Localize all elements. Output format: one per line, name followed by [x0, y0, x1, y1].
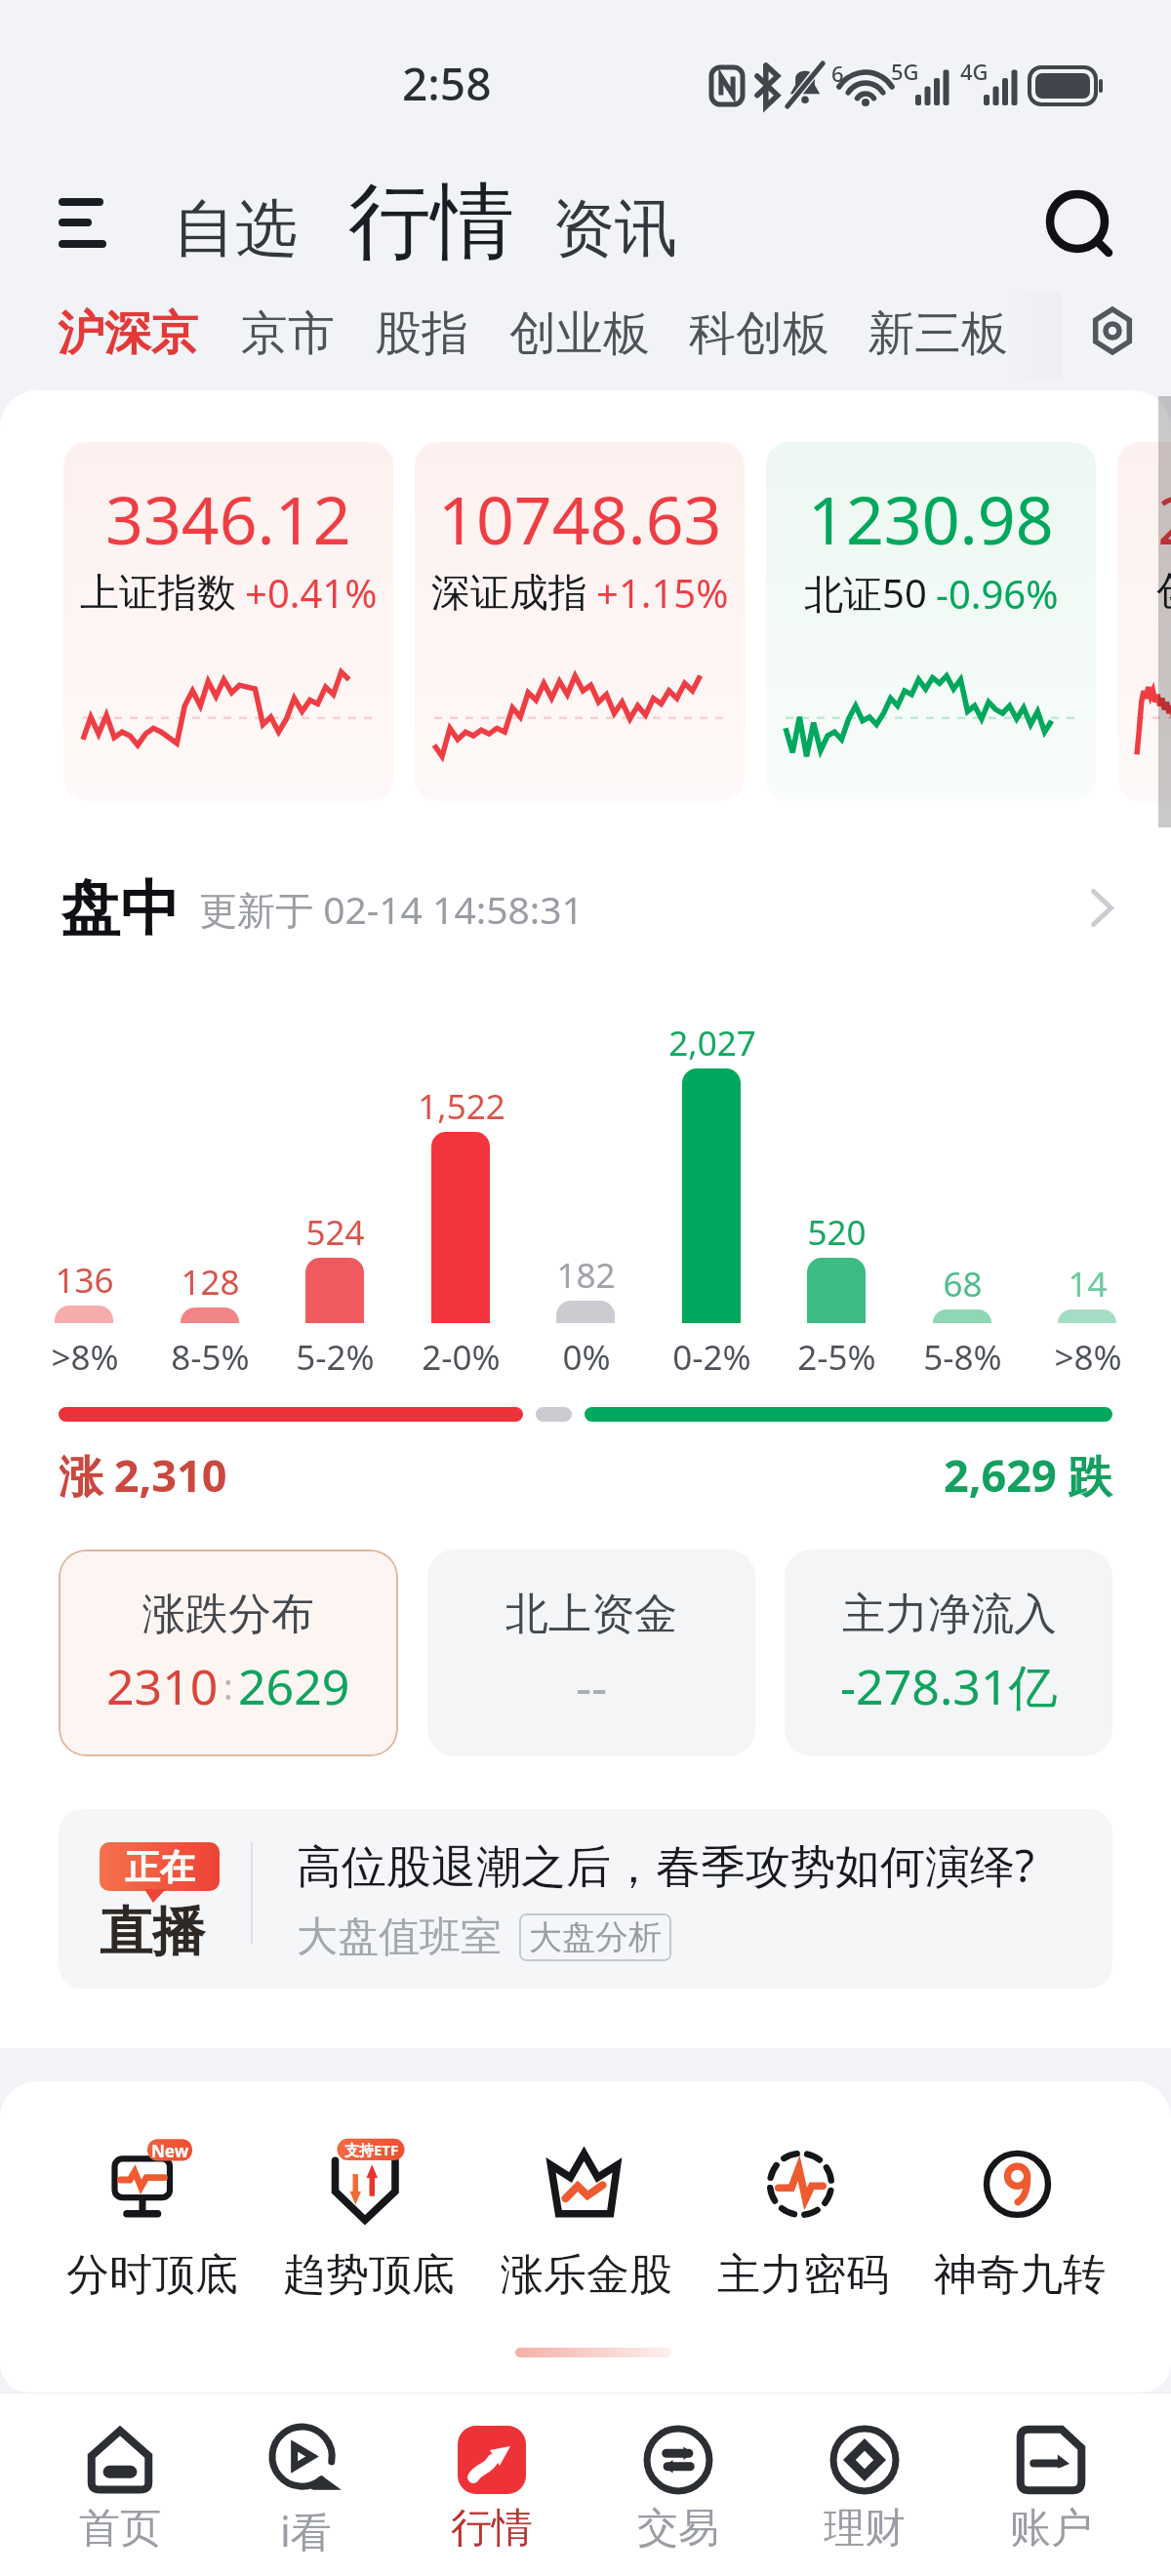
staticText: 资讯 — [552, 189, 677, 268]
button[interactable]: 沪深京 — [44, 289, 212, 379]
button[interactable]: 首页 — [27, 2410, 213, 2566]
staticText: 首页 — [79, 2503, 161, 2555]
staticText: 深证成指 — [431, 568, 587, 617]
staticText: 京市 — [241, 304, 335, 363]
button[interactable]: 资讯 — [541, 178, 689, 280]
staticText: 68 — [943, 1261, 983, 1308]
staticText: 2 — [1157, 473, 1171, 564]
staticText: 账户 — [1010, 2503, 1092, 2555]
staticText: 10748.63 — [438, 473, 722, 564]
staticText: >8% — [51, 1334, 119, 1381]
staticText: 理财 — [824, 2503, 906, 2555]
button[interactable]: 10748.63 — [415, 442, 745, 801]
staticText: 行情 — [348, 170, 514, 274]
staticText: 520 — [807, 1209, 867, 1256]
staticText: 涨乐金股 — [501, 2248, 672, 2302]
staticText: 主力密码 — [717, 2248, 889, 2302]
button[interactable]: 理财 — [772, 2410, 957, 2566]
button[interactable] — [0, 854, 1171, 963]
staticText: 更新于 02-14 14:58:31 — [199, 883, 584, 935]
staticText: : — [223, 1663, 233, 1711]
staticText: -0.96% — [936, 567, 1059, 620]
staticText: +0.41% — [245, 566, 378, 619]
staticText: New — [151, 2140, 189, 2161]
staticText: 高位股退潮之后，春季攻势如何演绎? — [297, 1834, 1034, 1896]
staticText: 大盘分析 — [529, 1916, 662, 1958]
staticText: 1230.98 — [808, 473, 1054, 564]
staticText: 科创板 — [689, 304, 829, 363]
button[interactable]: 涨乐金股 — [485, 2127, 688, 2313]
staticText: 盘中 — [61, 871, 180, 946]
button[interactable]: 主力密码 — [702, 2127, 905, 2313]
staticText: 2,629 跌 — [944, 1445, 1112, 1505]
staticText: 交易 — [637, 2503, 719, 2555]
staticText: 分时顶底 — [66, 2248, 238, 2302]
staticText: 8-5% — [171, 1334, 250, 1381]
staticText: 自选 — [173, 189, 298, 268]
button[interactable]: 账户 — [958, 2410, 1144, 2566]
staticText: 2310 — [106, 1653, 219, 1719]
button[interactable]: 1230.98 — [766, 442, 1096, 801]
staticText: 524 — [305, 1209, 365, 1256]
staticText: 2-0% — [422, 1334, 501, 1381]
button[interactable]: 交易 — [585, 2410, 771, 2566]
staticText: 6 — [831, 59, 844, 88]
button[interactable]: 主力净流入 — [785, 1550, 1112, 1756]
button[interactable]: 涨跌分布 — [59, 1550, 398, 1756]
staticText: 2629 — [238, 1653, 350, 1719]
staticText: 趋势顶底 — [283, 2248, 455, 2302]
staticText: 北上资金 — [505, 1588, 677, 1641]
button[interactable]: 京市 — [227, 289, 348, 379]
staticText: 涨跌分布 — [142, 1588, 314, 1641]
staticText: 0-2% — [672, 1334, 751, 1381]
staticText: 涨 2,310 — [59, 1445, 227, 1505]
staticText: 行情 — [451, 2503, 533, 2555]
button[interactable]: 北上资金 — [427, 1550, 755, 1756]
staticText: 股指 — [375, 304, 468, 363]
staticText: 直播 — [100, 1899, 205, 1965]
button[interactable]: 2 — [1117, 442, 1171, 801]
button[interactable]: 3346.12 — [63, 442, 393, 801]
button[interactable]: Menu — [18, 164, 100, 281]
staticText: 2,027 — [668, 1020, 756, 1067]
staticText: 北证50 — [804, 566, 927, 620]
button[interactable]: 科创板 — [675, 289, 843, 379]
button[interactable]: 创业板 — [496, 289, 664, 379]
button[interactable]: 新三板 — [854, 289, 1022, 379]
staticText: 创业板 — [509, 304, 650, 363]
staticText: >8% — [1054, 1334, 1122, 1381]
staticText: 136 — [55, 1257, 114, 1304]
button[interactable]: New — [51, 2127, 254, 2313]
button[interactable]: Search — [1034, 176, 1140, 283]
button[interactable]: 股指 — [361, 289, 482, 379]
staticText: 2-5% — [797, 1334, 876, 1381]
staticText: 1,522 — [418, 1083, 505, 1130]
staticText: +1.15% — [596, 566, 729, 619]
button[interactable]: 行情 — [337, 158, 526, 286]
staticText: 2:58 — [402, 53, 492, 114]
staticText: 正在 — [125, 1845, 195, 1889]
staticText: -278.31亿 — [840, 1653, 1058, 1719]
staticText: 上证指数 — [80, 568, 236, 617]
button[interactable]: i看 — [213, 2410, 398, 2566]
button[interactable]: 支持ETF — [267, 2127, 470, 2313]
button[interactable]: 行情 — [399, 2410, 585, 2566]
staticText: 沪深京 — [58, 304, 198, 363]
staticText: 创 — [1156, 566, 1171, 615]
staticText: -- — [576, 1653, 608, 1719]
staticText: 3346.12 — [105, 473, 351, 564]
staticText: 14 — [1068, 1261, 1108, 1308]
button[interactable]: 正在 — [59, 1809, 1112, 1989]
staticText: 4G — [960, 57, 989, 86]
staticText: 5-8% — [923, 1334, 1002, 1381]
staticText: 5-2% — [296, 1334, 375, 1381]
staticText: 182 — [556, 1252, 616, 1299]
staticText: 128 — [181, 1259, 240, 1306]
staticText: 0% — [562, 1334, 611, 1381]
staticText: 大盘值班室 — [297, 1912, 502, 1963]
button[interactable]: 神奇九转 — [918, 2127, 1121, 2313]
staticText: 支持ETF — [344, 2140, 399, 2159]
staticText: 新三板 — [868, 304, 1008, 363]
button[interactable]: Settings — [1070, 289, 1155, 373]
button[interactable]: 自选 — [161, 178, 309, 280]
